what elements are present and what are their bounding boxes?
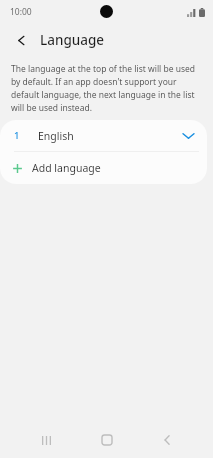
staticText: 10:00 xyxy=(10,6,32,18)
button[interactable]: Recents xyxy=(31,425,61,455)
button[interactable]: Home xyxy=(92,425,122,455)
staticText: Language xyxy=(40,31,105,49)
staticText: Add language xyxy=(32,161,101,175)
staticText: The language at the top of the list will… xyxy=(11,62,199,114)
button[interactable]: 1 xyxy=(0,120,207,151)
staticText: English xyxy=(38,129,74,143)
staticText: 1 xyxy=(14,129,20,142)
button[interactable]: Back xyxy=(11,30,31,50)
button[interactable]: Back xyxy=(152,425,182,455)
button[interactable]: Add language xyxy=(0,152,207,184)
